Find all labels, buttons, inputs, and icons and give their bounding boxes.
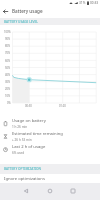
staticText: Ignore optimizations — [4, 176, 45, 182]
staticText: 60% — [5, 59, 11, 63]
staticText: BATTERY OPTIMIZATION — [4, 167, 42, 171]
staticText: 40% — [5, 73, 11, 77]
staticText: 100% — [4, 30, 11, 34]
button[interactable]: Ignore optimizations — [0, 174, 100, 183]
button[interactable]: Navigate back — [0, 6, 11, 17]
button[interactable]: Home — [42, 183, 58, 199]
staticText: 1 h 26 min — [12, 125, 28, 129]
staticText: 30% — [5, 80, 11, 84]
button[interactable]: Last 2 h of usage — [0, 143, 100, 156]
staticText: 01:20 — [59, 104, 66, 108]
button[interactable]: Usage on battery — [0, 117, 100, 130]
button[interactable]: Back — [18, 183, 34, 199]
button[interactable]: Recent apps — [65, 183, 81, 199]
staticText: 31% — [79, 1, 86, 5]
staticText: 50% — [5, 66, 11, 70]
staticText: Battery usage — [12, 8, 43, 14]
staticText: 80% — [5, 44, 11, 48]
staticText: 6% used — [12, 151, 25, 155]
staticText: + 26 h 53 min — [12, 138, 32, 142]
staticText: BATTERY USAGE LEVEL — [4, 20, 39, 24]
staticText: 20% — [5, 87, 11, 91]
staticText: 90% — [5, 37, 11, 41]
staticText: 00:50 — [25, 104, 32, 108]
staticText: Last 2 h of usage — [12, 144, 46, 150]
staticText: Usage on battery — [12, 118, 46, 124]
staticText: 00:33 — [90, 1, 99, 5]
staticText: Estimated time remaining — [12, 131, 63, 137]
staticText: 10% — [5, 94, 11, 98]
staticText: 0% — [7, 101, 11, 105]
button[interactable]: Estimated time remaining — [0, 130, 100, 143]
staticText: 70% — [5, 51, 11, 55]
